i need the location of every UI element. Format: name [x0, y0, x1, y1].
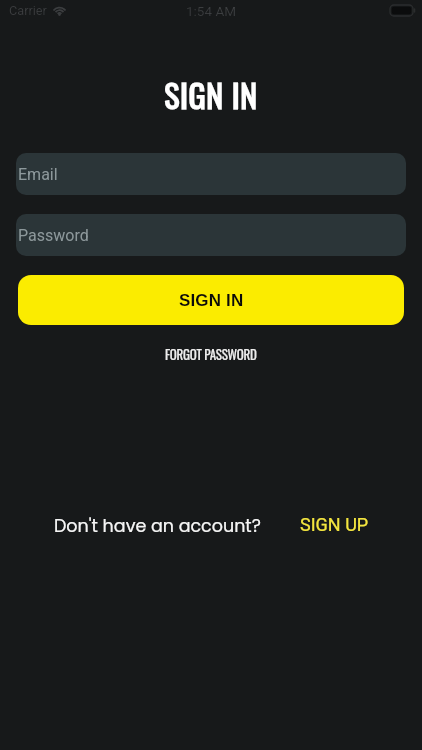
- staticText: 1:54 AM: [186, 3, 236, 19]
- button[interactable]: Email: [16, 153, 406, 195]
- staticText: FORGOT PASSWORD: [165, 344, 257, 362]
- staticText: Email: [18, 165, 58, 184]
- staticText: SIGN IN: [164, 71, 258, 118]
- button[interactable]: FORGOT PASSWORD: [151, 339, 271, 367]
- staticText: Carrier: [9, 3, 47, 18]
- staticText: Password: [18, 226, 89, 245]
- button[interactable]: Password: [16, 214, 406, 256]
- other: Battery: [390, 5, 415, 16]
- staticText: Don't have an account?: [54, 514, 261, 539]
- button[interactable]: SIGN UP: [294, 509, 375, 540]
- button[interactable]: SIGN IN: [18, 275, 404, 325]
- other: Wi-Fi: [52, 5, 67, 16]
- staticText: SIGN IN: [179, 291, 244, 310]
- staticText: SIGN UP: [300, 514, 369, 535]
